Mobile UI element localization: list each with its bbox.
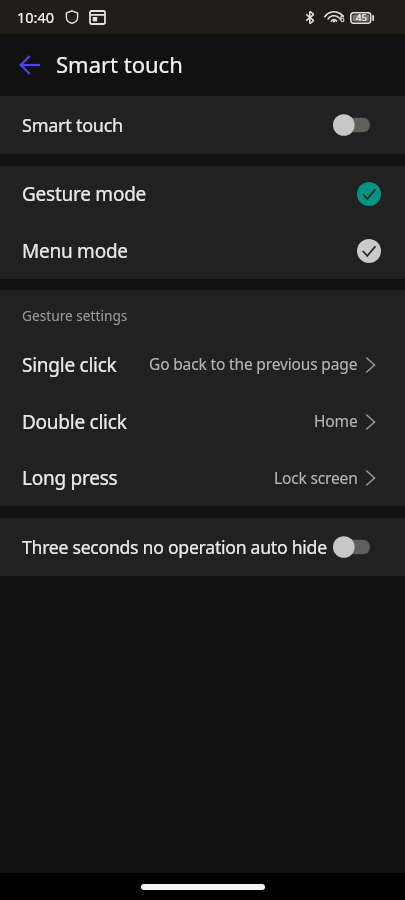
staticText: Lock screen [274,467,358,488]
button[interactable]: Back [0,34,56,91]
staticText: Smart touch [22,113,123,138]
button[interactable]: Three seconds no operation auto hide [0,518,405,576]
staticText: Double click [22,409,127,435]
staticText: 45 [356,11,367,24]
button[interactable]: Smart touch [0,96,405,154]
staticText: Gesture settings [22,306,128,325]
button[interactable]: Double click [0,393,405,450]
button[interactable]: Gesture mode [0,166,405,222]
staticText: Gesture mode [22,181,147,207]
staticText: 10:40 [17,7,55,27]
staticText: Long press [22,465,118,491]
staticText: 6 [340,13,345,24]
staticText: Three seconds no operation auto hide [22,535,327,559]
staticText: Go back to the previous page [149,353,358,374]
staticText: Menu mode [22,238,128,264]
button[interactable]: Single click [0,336,405,393]
button[interactable]: Menu mode [0,222,405,279]
staticText: Single click [22,352,117,378]
staticText: Smart touch [56,49,183,79]
button[interactable]: Long press [0,450,405,506]
staticText: Home [314,410,358,431]
